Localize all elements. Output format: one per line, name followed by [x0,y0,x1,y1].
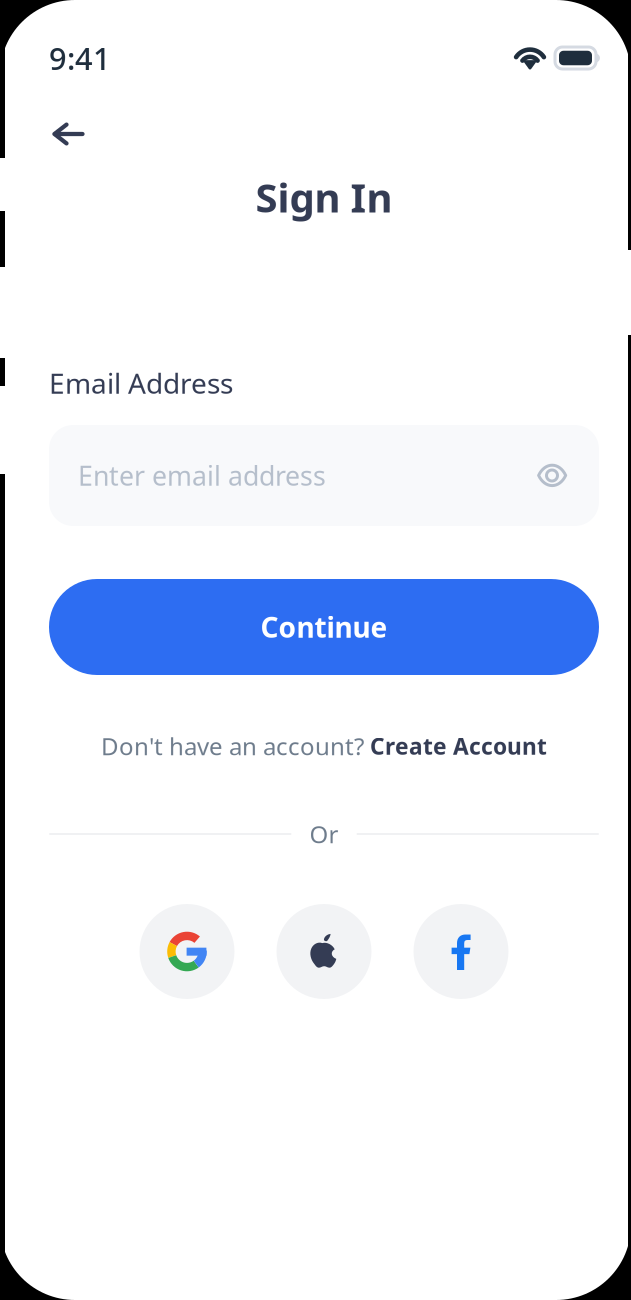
button[interactable]: Continue with Apple [276,904,371,999]
staticText: Don't have an account? [101,730,370,762]
button[interactable]: Continue with Google [139,904,234,999]
staticText: Email Address [49,364,233,402]
button[interactable]: Show password [530,453,574,497]
staticText: Create Account [370,731,547,761]
button[interactable]: Continue [49,579,599,675]
button[interactable]: Create Account [370,731,547,761]
staticText: Continue [260,608,387,646]
staticText: Enter email address [78,458,326,493]
staticText: Or [309,818,338,850]
staticText: Sign In [255,170,392,223]
button[interactable]: Back [49,110,104,158]
staticText: 9:41 [49,38,111,78]
button[interactable]: Continue with Facebook [413,904,508,999]
